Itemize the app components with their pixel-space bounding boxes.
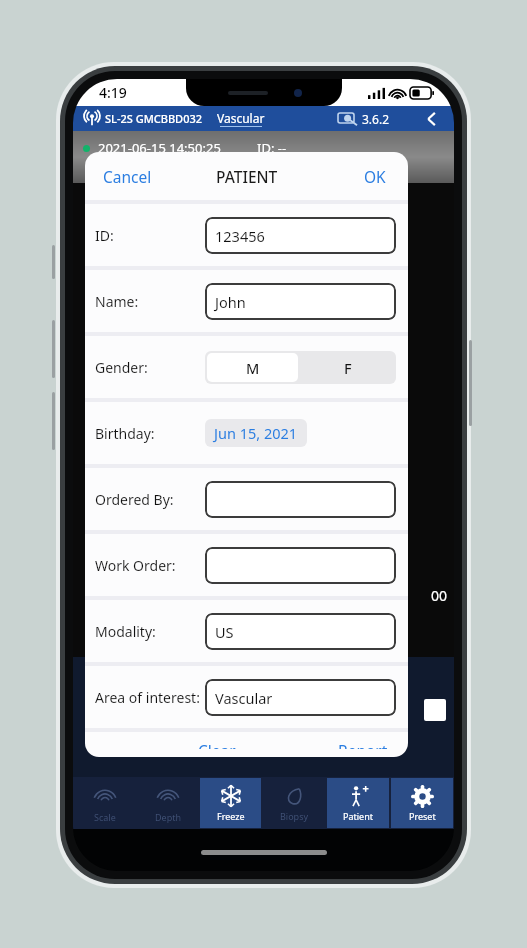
button[interactable]: Patient [327, 778, 389, 828]
staticText: PATIENT [216, 166, 278, 187]
staticText: Jun 15, 2021 [214, 423, 298, 443]
staticText: OK [364, 166, 386, 187]
staticText: Modality: [95, 622, 156, 641]
button[interactable]: Clear [186, 732, 248, 757]
button[interactable]: Jun 15, 2021 [205, 419, 307, 447]
staticText: 3.6.2 [362, 111, 390, 127]
staticText: MI 0.6 TIS 0.0 [91, 159, 177, 177]
staticText: Vascular [215, 688, 273, 708]
button[interactable]: Cancel [93, 160, 162, 193]
staticText: 00 [431, 586, 448, 605]
staticText: Depth [155, 811, 181, 823]
staticText: Patient [343, 810, 373, 822]
button[interactable]: Back [416, 106, 448, 131]
button[interactable]: Scale [74, 778, 135, 828]
staticText: ID: -- [257, 139, 287, 157]
button[interactable]: Report [326, 732, 400, 757]
staticText: John [215, 292, 246, 312]
staticText: Ordered By: [95, 490, 174, 509]
button[interactable]: John [205, 283, 396, 320]
button[interactable]: OK [354, 160, 396, 193]
button[interactable]: M [207, 353, 298, 382]
button[interactable]: Depth [137, 778, 198, 828]
staticText: Gender: [95, 358, 148, 377]
button[interactable]: Freeze [200, 778, 261, 828]
staticText: 123456 [215, 226, 265, 246]
staticText: Birthday: [95, 424, 155, 443]
staticText: Name: [95, 292, 139, 311]
button[interactable]: Preset [391, 778, 453, 828]
staticText: Area of interest: [95, 688, 200, 707]
staticText: Biopsy [280, 810, 309, 822]
button[interactable] [205, 547, 396, 584]
staticText: ID: [95, 226, 114, 245]
staticText: 2021-06-15 14:50:25 [98, 139, 221, 157]
staticText: Freeze [217, 810, 245, 822]
staticText: Report [338, 740, 388, 749]
staticText: Scale [94, 811, 116, 823]
button[interactable] [205, 481, 396, 518]
staticText: Preset [409, 810, 436, 822]
button[interactable]: US [205, 613, 396, 650]
staticText: Clear [198, 740, 236, 749]
staticText: M [246, 358, 260, 378]
button[interactable]: Biopsy [263, 778, 325, 828]
button[interactable]: F [300, 351, 396, 384]
staticText: Work Order: [95, 556, 176, 575]
staticText: SL-2S GMCBBD032 [105, 111, 203, 126]
staticText: Vascular [217, 110, 265, 126]
staticText: Cancel [103, 166, 152, 187]
button[interactable]: 123456 [205, 217, 396, 254]
button[interactable]: Vascular [205, 679, 396, 716]
staticText: F [344, 358, 352, 378]
staticText: 4:19 [99, 83, 127, 102]
staticText: US [215, 622, 234, 642]
